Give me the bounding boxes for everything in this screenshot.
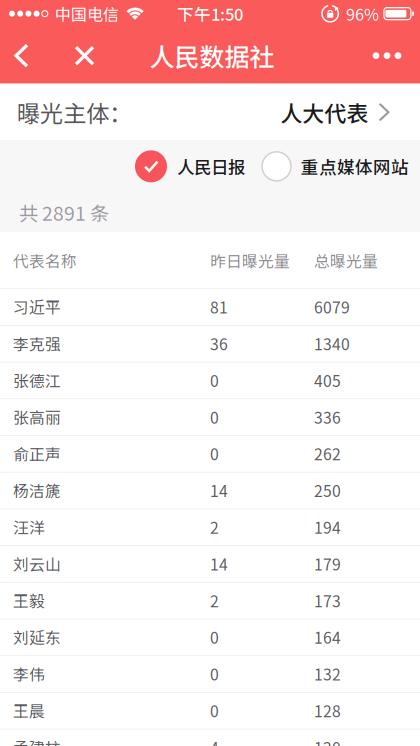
staticText: 14 — [210, 552, 228, 575]
staticText: 杨洁篪 — [13, 479, 61, 502]
staticText: 0 — [210, 442, 219, 465]
staticText: 张德江 — [13, 369, 61, 391]
staticText: 俞正声 — [13, 442, 61, 465]
staticText: 2 — [210, 589, 219, 612]
staticText: 刘延东 — [13, 626, 61, 648]
button[interactable]: 王毅 — [0, 582, 420, 619]
button[interactable]: 张高丽 — [0, 398, 420, 435]
button[interactable]: 刘云山 — [0, 545, 420, 582]
staticText: 164 — [314, 626, 341, 648]
staticText: 人民日报 — [177, 154, 245, 179]
staticText: 4 — [210, 736, 219, 746]
staticText: 0 — [210, 699, 219, 722]
staticText: 张高丽 — [13, 405, 61, 428]
staticText: 人大代表 — [280, 96, 368, 128]
button[interactable]: 刘延东 — [0, 619, 420, 655]
staticText: 96% — [346, 2, 379, 25]
button[interactable]: 关闭 — [43, 28, 108, 84]
staticText: 132 — [314, 662, 341, 685]
staticText: 刘云山 — [13, 552, 61, 575]
staticText: 6079 — [314, 295, 350, 318]
staticText: 128 — [314, 699, 341, 722]
staticText: 405 — [314, 369, 341, 391]
staticText: 下午1:50 — [177, 2, 243, 26]
staticText: 14 — [210, 479, 228, 502]
staticText: 0 — [210, 405, 219, 428]
button[interactable]: 人民日报 — [135, 140, 245, 186]
staticText: 194 — [314, 515, 341, 538]
staticText: 重点媒体网站 — [301, 154, 409, 179]
button[interactable]: 返回 — [0, 28, 43, 84]
staticText: 人民数据社 — [149, 37, 274, 74]
button[interactable]: 汪洋 — [0, 508, 420, 545]
staticText: 李克强 — [13, 332, 61, 355]
staticText: 262 — [314, 442, 341, 465]
staticText: 共 2891 条 — [19, 198, 109, 226]
staticText: 2 — [210, 515, 219, 538]
button[interactable]: 杨洁篪 — [0, 472, 420, 508]
staticText: 81 — [210, 295, 228, 318]
staticText: 代表名称 — [13, 249, 77, 272]
staticText: 120 — [314, 736, 341, 746]
staticText: 王毅 — [13, 589, 45, 612]
staticText: 173 — [314, 589, 341, 612]
button[interactable]: 俞正声 — [0, 435, 420, 472]
button[interactable]: 更多 — [359, 28, 415, 84]
staticText: 336 — [314, 405, 341, 428]
staticText: 王晨 — [13, 699, 45, 722]
button[interactable]: 李伟 — [0, 655, 420, 692]
staticText: 习近平 — [13, 295, 61, 318]
staticText: 1340 — [314, 332, 350, 355]
button[interactable]: 李克强 — [0, 325, 420, 362]
button[interactable]: 张德江 — [0, 362, 420, 398]
staticText: 总曝光量 — [314, 249, 378, 272]
staticText: 36 — [210, 332, 228, 355]
staticText: 曝光主体： — [17, 95, 132, 129]
staticText: 0 — [210, 626, 219, 648]
staticText: 李伟 — [13, 662, 45, 685]
staticText: 昨日曝光量 — [210, 249, 290, 272]
button[interactable]: 孟建柱 — [0, 729, 420, 746]
staticText: 汪洋 — [13, 515, 45, 538]
staticText: 0 — [210, 369, 219, 391]
staticText: 孟建柱 — [13, 736, 61, 746]
staticText: 0 — [210, 662, 219, 685]
staticText: 179 — [314, 552, 341, 575]
button[interactable]: 曝光主体： — [0, 84, 420, 141]
staticText: 250 — [314, 479, 341, 502]
button[interactable]: 王晨 — [0, 692, 420, 729]
button[interactable]: 习近平 — [0, 288, 420, 325]
button[interactable]: 重点媒体网站 — [245, 142, 409, 185]
staticText: 中国电信 — [55, 2, 119, 25]
